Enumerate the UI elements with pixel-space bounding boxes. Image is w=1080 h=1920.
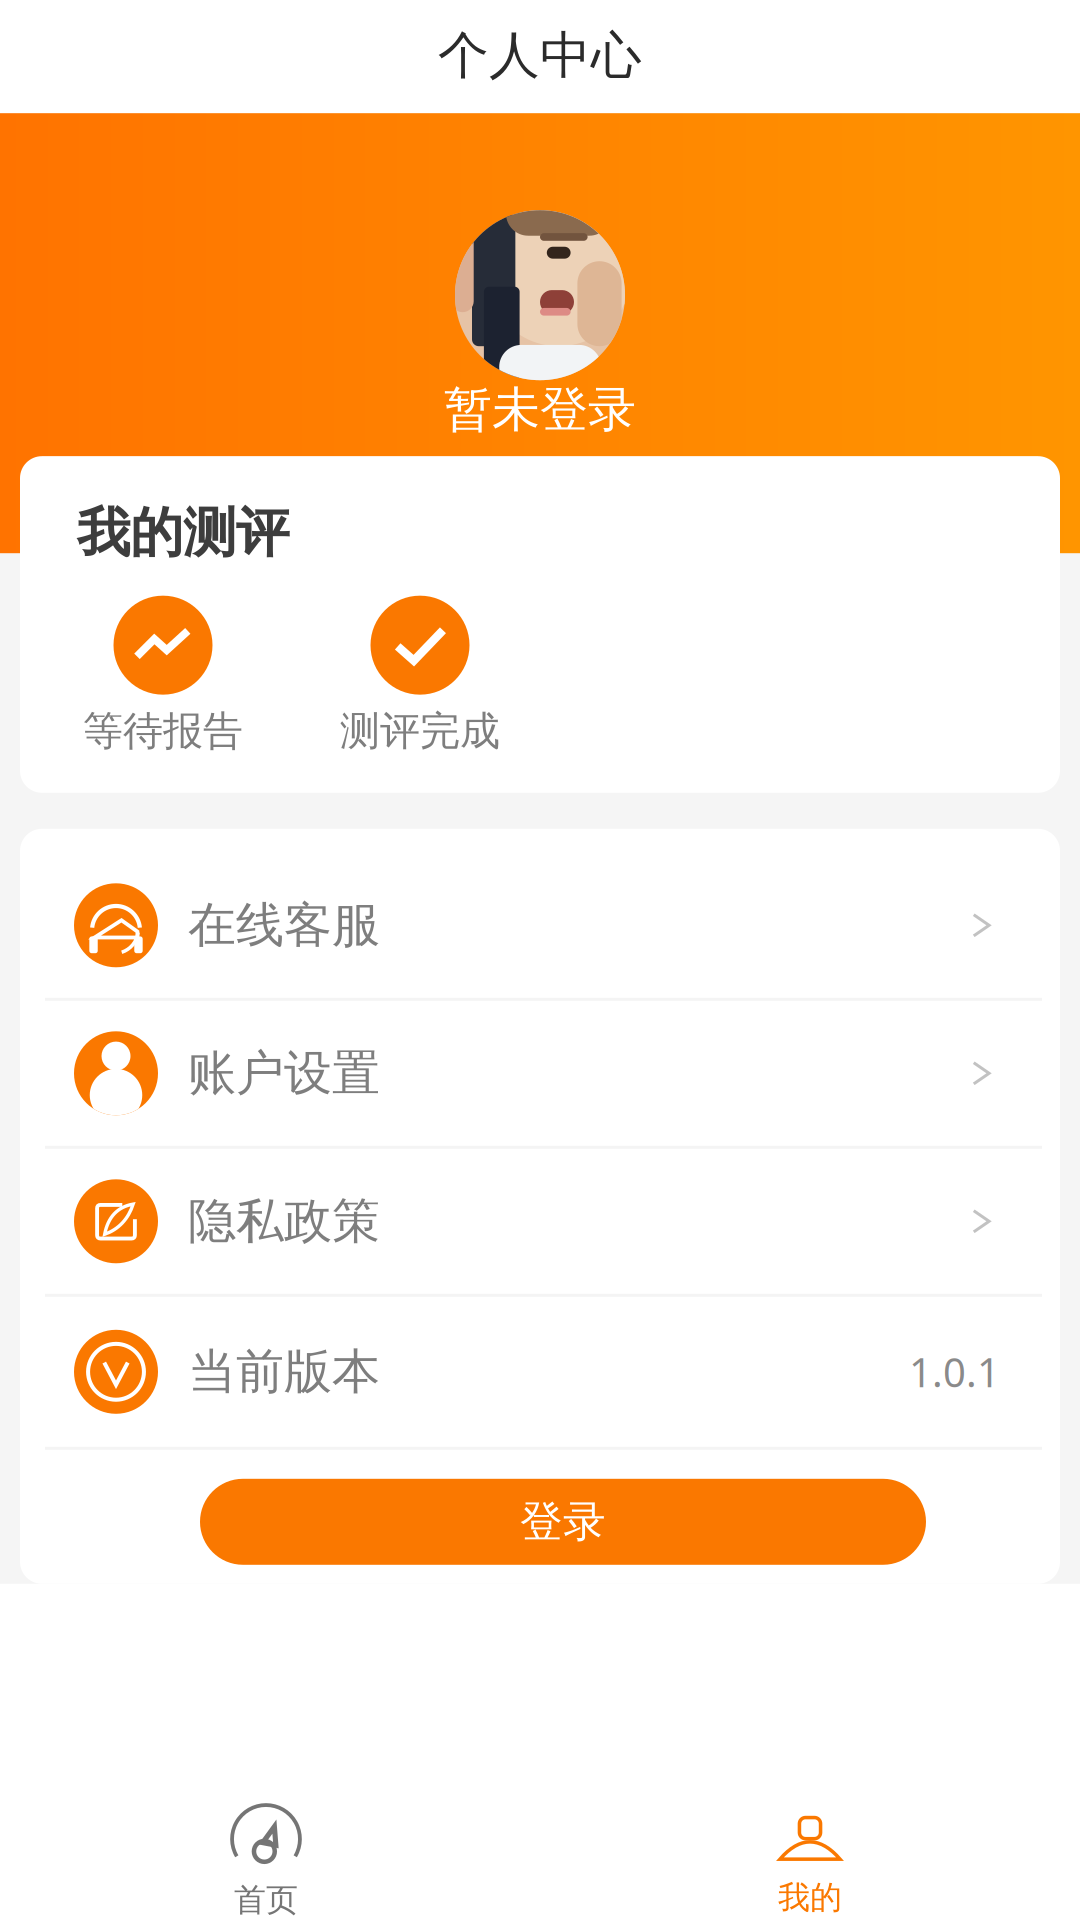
button[interactable]: 在线客服 bbox=[20, 853, 1060, 998]
staticText: 账户设置 bbox=[188, 1044, 380, 1103]
button[interactable]: 等待报告 bbox=[73, 596, 253, 756]
staticText: 1.0.1 bbox=[909, 1345, 1000, 1398]
staticText: 隐私政策 bbox=[188, 1192, 380, 1251]
button[interactable]: 隐私政策 bbox=[20, 1149, 1060, 1294]
staticText: 个人中心 bbox=[438, 25, 642, 87]
button[interactable]: 账户设置 bbox=[20, 1001, 1060, 1146]
staticText: 我的 bbox=[778, 1878, 842, 1917]
button[interactable]: 测评完成 bbox=[330, 596, 510, 756]
staticText: 我的测评 bbox=[77, 500, 289, 566]
button[interactable]: 我的 bbox=[675, 1814, 945, 1917]
button[interactable]: 登录 bbox=[200, 1479, 926, 1565]
staticText: 首页 bbox=[234, 1880, 298, 1920]
button[interactable]: 首页 bbox=[131, 1811, 401, 1920]
staticText: 在线客服 bbox=[188, 896, 380, 955]
staticText: 等待报告 bbox=[83, 707, 243, 756]
button[interactable]: 当前版本 bbox=[20, 1297, 1060, 1447]
staticText: 当前版本 bbox=[188, 1342, 380, 1401]
staticText: 测评完成 bbox=[340, 707, 500, 756]
staticText: 暂未登录 bbox=[444, 380, 636, 439]
staticText: 登录 bbox=[520, 1496, 606, 1548]
